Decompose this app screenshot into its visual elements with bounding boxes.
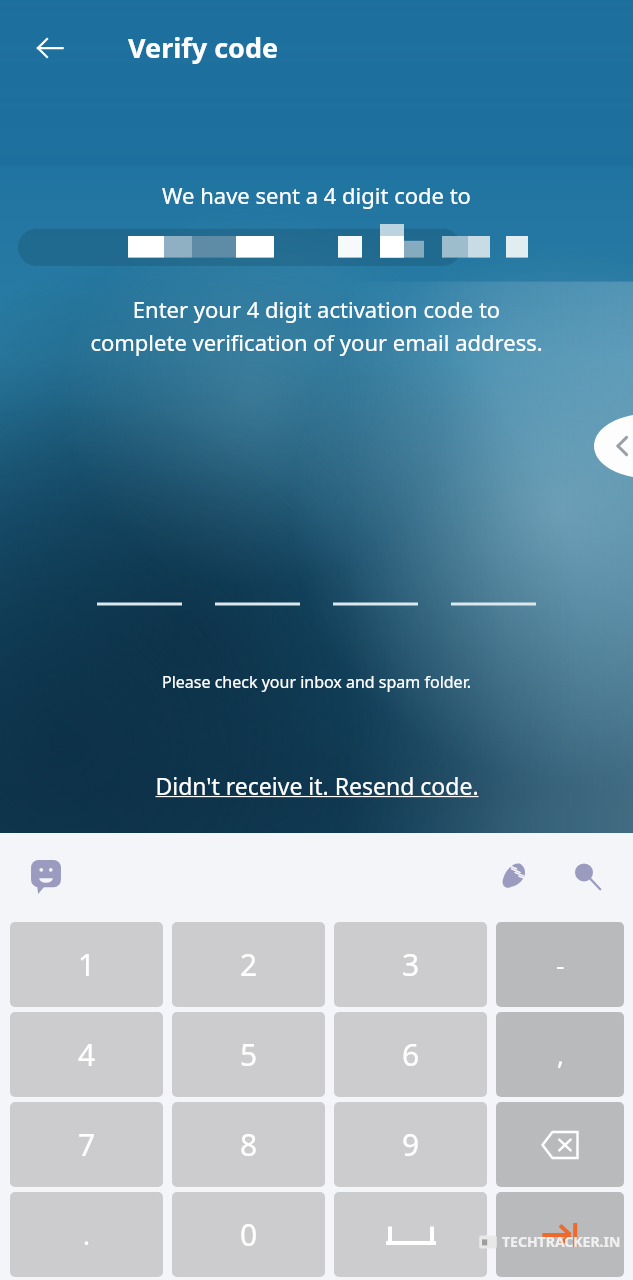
- button[interactable]: 3: [334, 922, 487, 1007]
- button[interactable]: 9: [334, 1102, 487, 1187]
- button[interactable]: -: [496, 922, 624, 1007]
- button[interactable]: 0: [172, 1192, 325, 1277]
- button[interactable]: Stickers: [26, 857, 66, 897]
- staticText: TECHTRACKER.IN: [502, 1232, 621, 1251]
- button[interactable]: 7: [10, 1102, 163, 1187]
- button[interactable]: 8: [172, 1102, 325, 1187]
- staticText: 4: [78, 1034, 96, 1075]
- button[interactable]: Space: [334, 1192, 487, 1277]
- button[interactable]: Search: [566, 855, 608, 897]
- button[interactable]: Back: [22, 20, 78, 76]
- button[interactable]: Delete: [496, 1102, 624, 1187]
- button[interactable]: 1: [10, 922, 163, 1007]
- button[interactable]: Voice input: [493, 855, 535, 897]
- button[interactable]: 6: [334, 1012, 487, 1097]
- staticText: 1: [78, 944, 96, 985]
- button[interactable]: 2: [172, 922, 325, 1007]
- staticText: We have sent a 4 digit code to: [0, 180, 633, 210]
- staticText: Didn't receive it. Resend code.: [155, 770, 479, 801]
- button[interactable]: 4: [10, 1012, 163, 1097]
- staticText: Please check your inbox and spam folder.: [0, 671, 633, 693]
- staticText: 7: [78, 1124, 96, 1165]
- staticText: 9: [402, 1124, 420, 1165]
- other: Space: [388, 1224, 434, 1246]
- staticText: 5: [240, 1034, 258, 1075]
- staticText: ,: [557, 1037, 564, 1072]
- button[interactable]: Open panel: [607, 415, 633, 477]
- other: Enter: [540, 1215, 580, 1255]
- button[interactable]: Didn't receive it. Resend code.: [0, 770, 633, 814]
- staticText: 6: [402, 1034, 420, 1075]
- staticText: 3: [402, 944, 420, 985]
- button[interactable]: ,: [496, 1012, 624, 1097]
- staticText: Enter your 4 digit activation code to co…: [20, 294, 613, 357]
- button[interactable]: 5: [172, 1012, 325, 1097]
- staticText: -: [556, 947, 565, 982]
- staticText: 8: [240, 1124, 258, 1165]
- button[interactable]: Enter: [496, 1192, 624, 1277]
- staticText: 0: [240, 1214, 258, 1255]
- staticText: 2: [240, 944, 258, 985]
- other: Delete: [541, 1126, 579, 1164]
- staticText: .: [83, 1217, 90, 1252]
- staticText: Verify code: [128, 29, 279, 66]
